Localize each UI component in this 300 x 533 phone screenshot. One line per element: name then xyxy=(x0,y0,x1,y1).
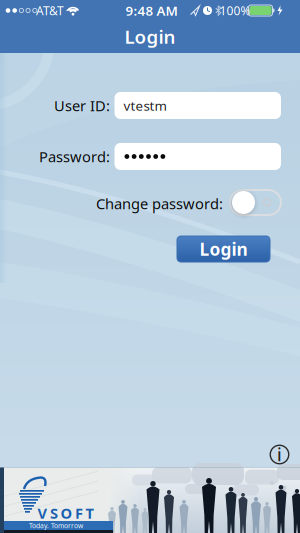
staticText: Change password: xyxy=(96,194,223,213)
staticText: VSOFT xyxy=(37,503,93,523)
button[interactable]: vtestm xyxy=(114,92,281,119)
staticText: 9:48 AM xyxy=(125,2,177,19)
staticText: 100% xyxy=(219,2,250,18)
staticText: Today. Tomorrow xyxy=(29,521,83,530)
staticText: User ID: xyxy=(54,96,110,115)
staticText: i xyxy=(277,443,282,466)
staticText: Password: xyxy=(39,147,110,166)
button[interactable] xyxy=(114,143,281,170)
staticText: Login xyxy=(124,24,175,49)
staticText: vtestm xyxy=(123,97,166,114)
button[interactable]: Login xyxy=(177,236,270,262)
staticText: Login xyxy=(199,237,247,260)
staticText: AT&T xyxy=(36,2,64,18)
button[interactable]: i xyxy=(268,443,290,465)
button[interactable] xyxy=(230,188,285,216)
